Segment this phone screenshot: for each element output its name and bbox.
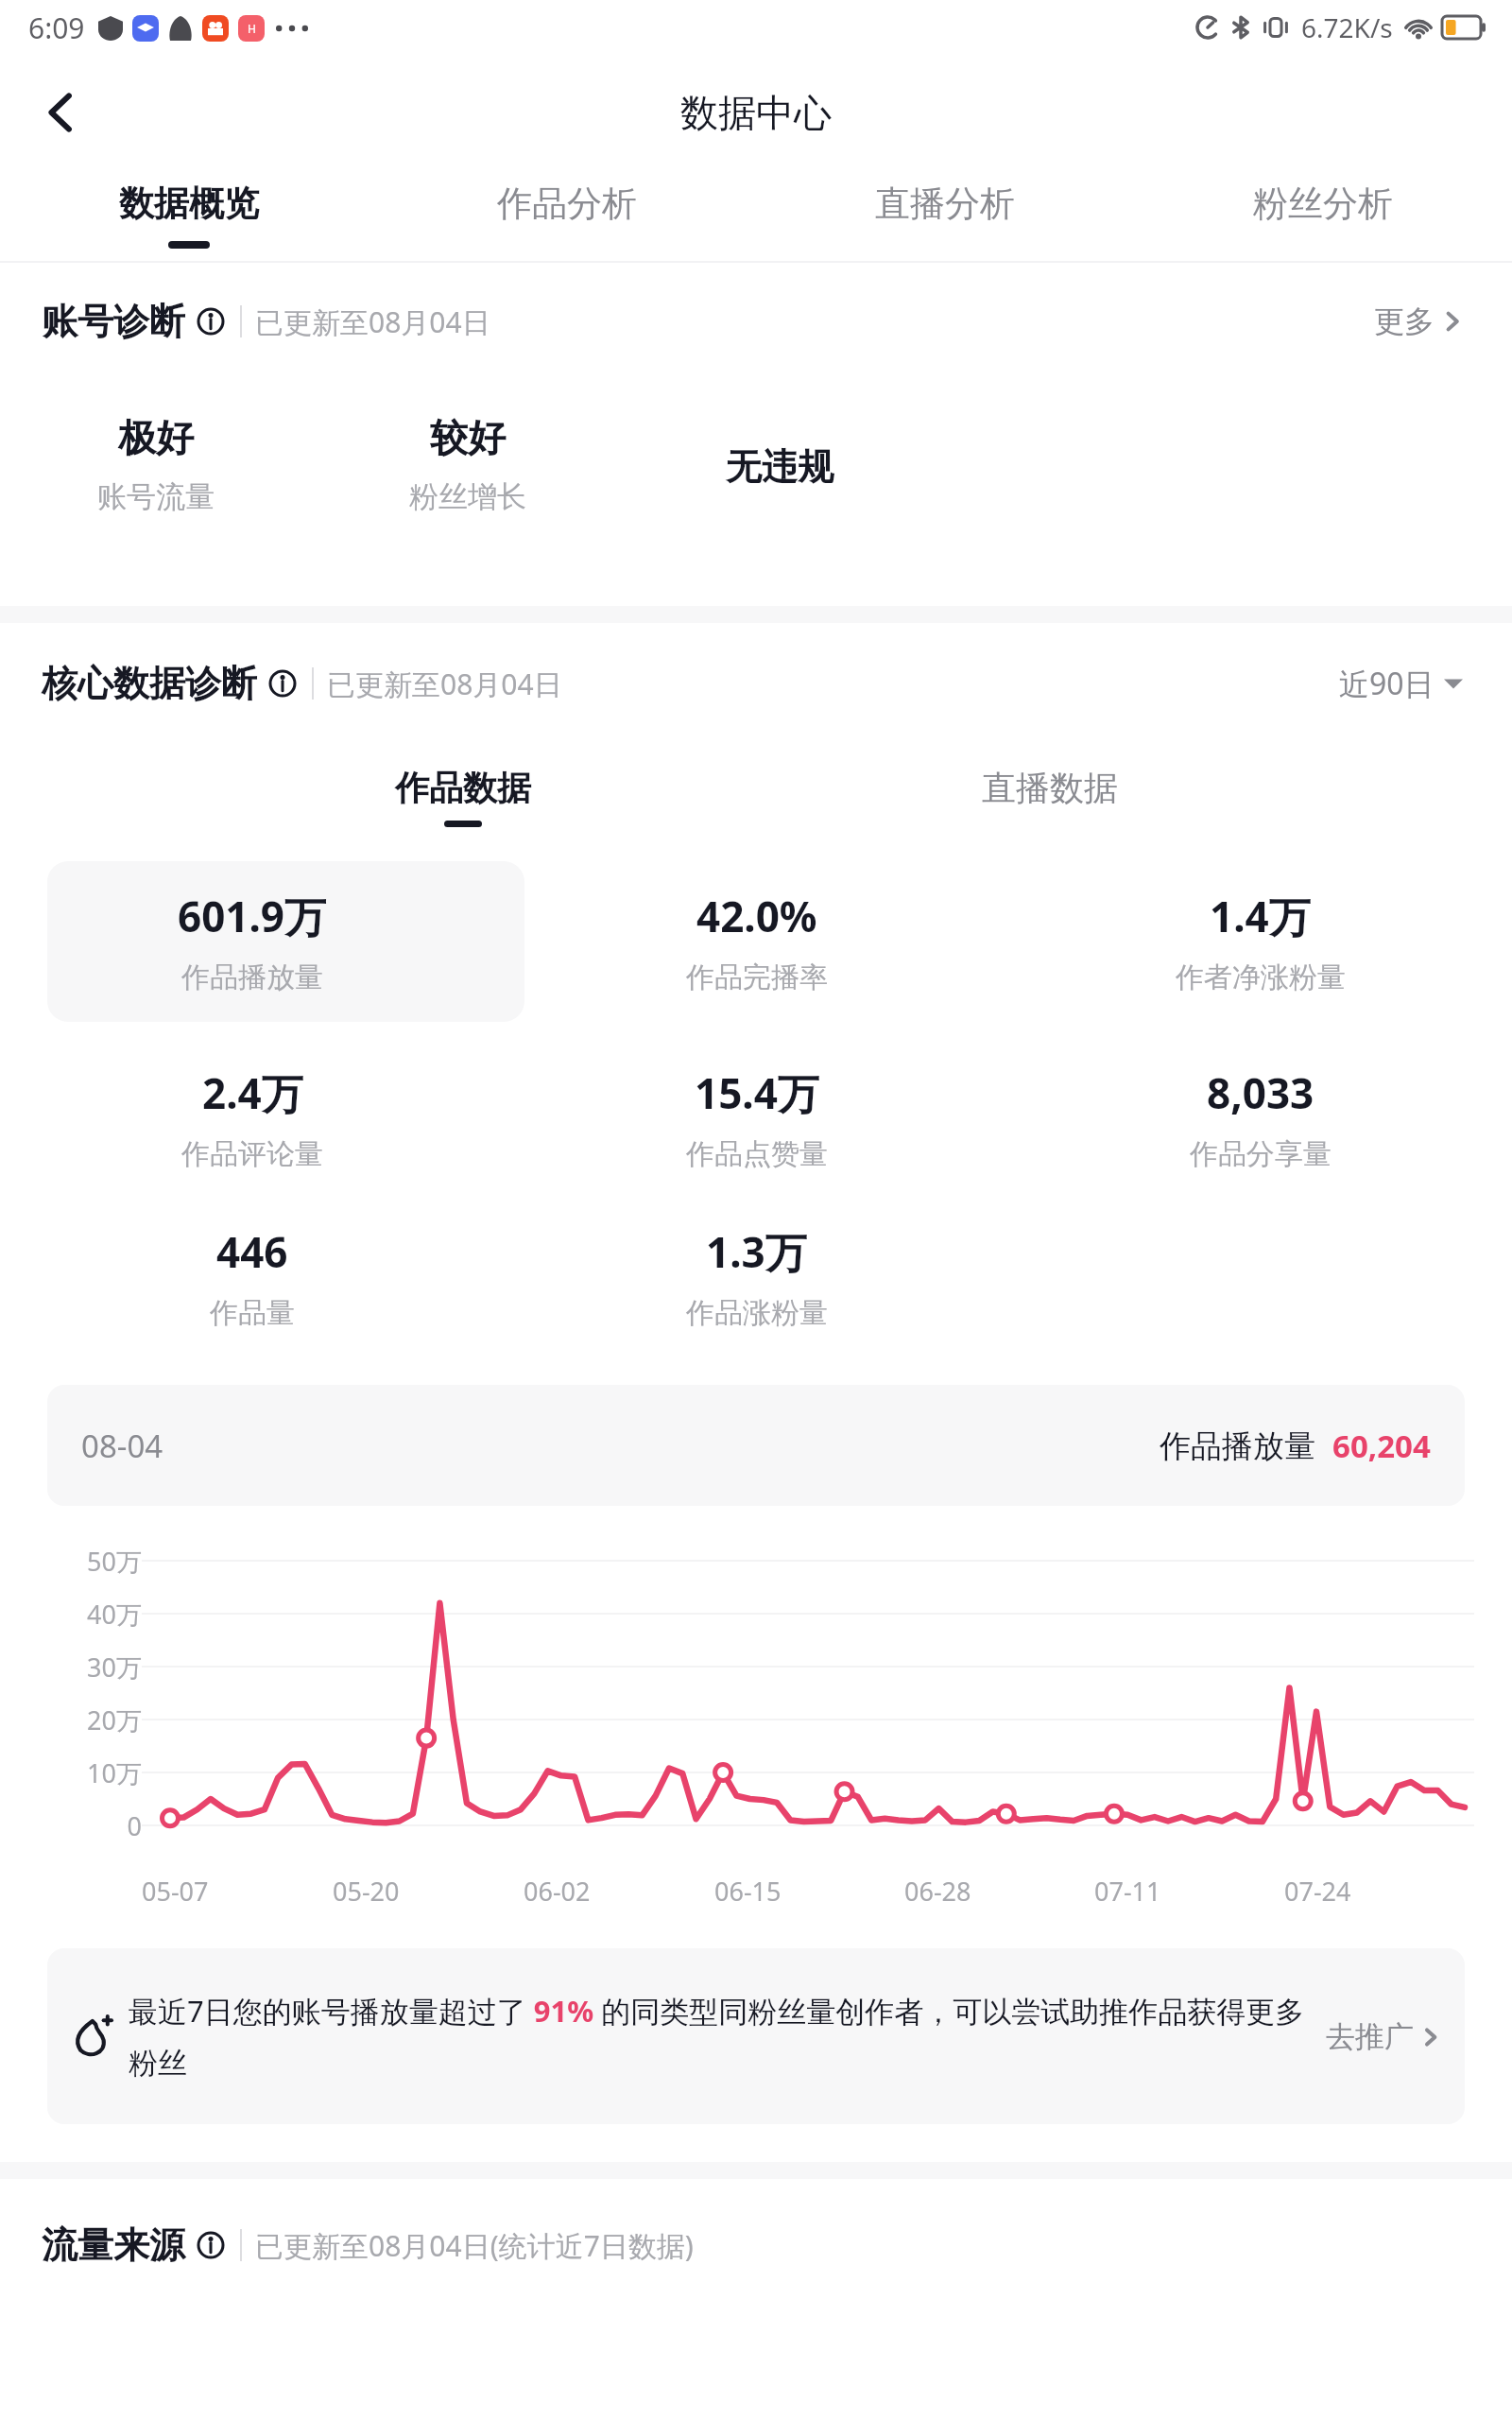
staticText: 核心数据诊断 (42, 661, 257, 706)
staticText: 近90日 (1339, 663, 1435, 704)
button[interactable]: Info (195, 2229, 227, 2261)
button[interactable]: Info (266, 667, 299, 700)
button[interactable]: 更多 (1366, 295, 1470, 348)
staticText: 05-07 (142, 1874, 209, 1909)
staticText: 作品点赞量 (686, 1136, 828, 1172)
staticText: 账号流量 (97, 478, 215, 515)
staticText: 446 (216, 1223, 288, 1280)
staticText: 已更新至08月04日 (327, 665, 562, 703)
staticText: 作品数据 (395, 767, 531, 809)
button[interactable]: 极好 (0, 414, 312, 515)
button[interactable]: 601.9万 (0, 861, 505, 1022)
staticText: 20万 (87, 1703, 142, 1737)
staticText: 数据中心 (680, 89, 832, 136)
button[interactable]: 1.3万 (505, 1211, 1008, 1343)
staticText: 作品播放量 (1160, 1426, 1315, 1466)
button[interactable]: 2.4万 (0, 1052, 505, 1184)
button[interactable]: Info (195, 305, 227, 337)
staticText: 作品完播率 (686, 959, 828, 995)
button[interactable]: 数据概览 (0, 170, 378, 263)
staticText: 直播数据 (982, 767, 1118, 809)
staticText: 06-28 (904, 1874, 971, 1909)
button[interactable]: 粉丝分析 (1134, 170, 1512, 263)
button[interactable]: 无违规 (624, 414, 936, 490)
staticText: 08-04 (81, 1425, 163, 1467)
button[interactable]: 1.4万 (1008, 861, 1512, 1022)
staticText: 已更新至08月04日 (255, 302, 490, 341)
staticText: 最近7日您的账号播放量超过了 91% 的同类型同粉丝量创作者，可以尝试助推作品获… (129, 1991, 1313, 2083)
staticText: 账号诊断 (42, 299, 185, 344)
staticText: 07-24 (1284, 1874, 1351, 1909)
button[interactable]: 近90日 (1332, 655, 1470, 712)
button[interactable]: 直播分析 (756, 170, 1134, 263)
staticText: 较好 (430, 414, 506, 461)
staticText: 作品分享量 (1190, 1136, 1332, 1172)
staticText: 去推广 (1326, 2018, 1414, 2055)
staticText: 50万 (87, 1544, 142, 1579)
button[interactable]: 作品数据 (376, 767, 550, 827)
button[interactable]: Back (19, 70, 104, 155)
staticText: 1.4万 (1210, 888, 1311, 944)
staticText: 05-20 (333, 1874, 400, 1909)
staticText: 粉丝分析 (1253, 181, 1393, 226)
staticText: 40万 (87, 1597, 142, 1632)
staticText: 15.4万 (695, 1064, 819, 1121)
staticText: 流量来源 (42, 2222, 185, 2268)
staticText: 极好 (118, 414, 194, 461)
staticText: 07-11 (1094, 1874, 1161, 1909)
staticText: 42.0% (696, 888, 817, 944)
staticText: 60,204 (1332, 1425, 1431, 1467)
staticText: 06-02 (524, 1874, 591, 1909)
button[interactable] (47, 861, 524, 1022)
staticText: 作品量 (210, 1295, 295, 1331)
staticText: 30万 (87, 1650, 142, 1685)
staticText: 1.3万 (706, 1223, 807, 1280)
button[interactable]: 8,033 (1008, 1052, 1512, 1184)
button[interactable]: 作品分析 (378, 170, 756, 263)
staticText: 作品涨粉量 (686, 1295, 828, 1331)
button[interactable]: 直播数据 (963, 767, 1137, 827)
staticText: 更多 (1374, 302, 1435, 340)
staticText: 2.4万 (202, 1064, 303, 1121)
button[interactable]: 15.4万 (505, 1052, 1008, 1184)
staticText: 粉丝增长 (409, 478, 526, 515)
staticText: 6.72K/s (1301, 9, 1393, 45)
staticText: 06-15 (714, 1874, 782, 1909)
staticText: 数据概览 (119, 181, 259, 226)
staticText: 601.9万 (178, 888, 327, 944)
staticText: 作品分析 (497, 181, 637, 226)
staticText: H (248, 21, 256, 36)
button[interactable]: 08-04 (47, 1385, 1465, 1506)
button[interactable]: 较好 (312, 414, 624, 515)
staticText: 无违规 (726, 444, 833, 490)
button[interactable]: 最近7日您的账号播放量超过了 91% 的同类型同粉丝量创作者，可以尝试助推作品获… (47, 1948, 1465, 2124)
staticText: 作品评论量 (181, 1136, 323, 1172)
staticText: 0 (127, 1808, 142, 1843)
staticText: 8,033 (1207, 1064, 1314, 1121)
staticText: 10万 (87, 1755, 142, 1790)
button[interactable]: 446 (0, 1211, 505, 1343)
staticText: 6:09 (28, 9, 85, 47)
staticText: 直播分析 (875, 181, 1015, 226)
staticText: 已更新至08月04日(统计近7日数据) (255, 2226, 694, 2265)
staticText: 作品播放量 (181, 959, 323, 995)
button[interactable]: 42.0% (505, 861, 1008, 1022)
staticText: 作者净涨粉量 (1176, 959, 1346, 995)
